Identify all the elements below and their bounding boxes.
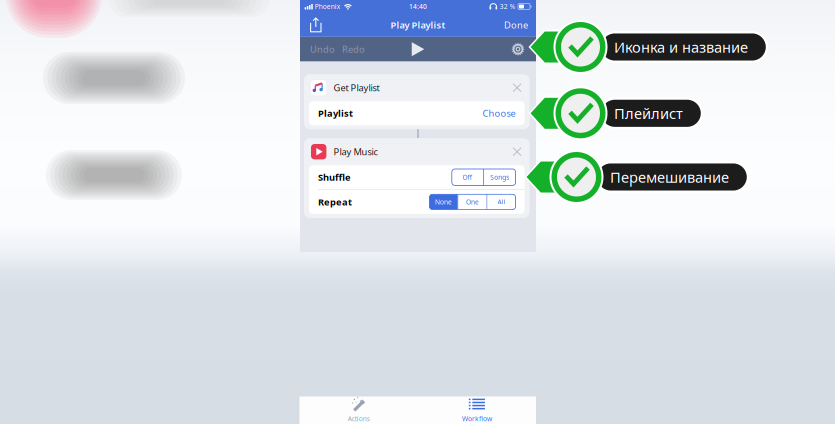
button[interactable]: Undo [310, 38, 335, 60]
staticText: Songs [490, 173, 509, 182]
staticText: None [435, 197, 452, 206]
button[interactable]: Choose [483, 103, 516, 123]
button[interactable]: Remove Get Playlist [512, 82, 523, 93]
button[interactable]: None [429, 194, 458, 209]
staticText: 32 % [500, 2, 516, 11]
staticText: Redo [342, 43, 365, 55]
staticText: Get Playlist [333, 81, 379, 94]
button[interactable]: Songs [484, 169, 516, 185]
staticText: Choose [483, 107, 516, 119]
button[interactable]: Settings [509, 40, 527, 58]
button[interactable]: Actions [299, 393, 418, 424]
staticText: Phoenix [315, 2, 341, 11]
button[interactable]: Workflow [418, 393, 536, 424]
staticText: Play Playlist [390, 19, 445, 31]
button[interactable]: Share [306, 15, 326, 35]
staticText: 14:40 [409, 2, 427, 11]
staticText: Actions [348, 414, 370, 423]
staticText: Перемешивание [610, 167, 729, 187]
button[interactable]: Redo [335, 38, 365, 60]
button[interactable]: All [487, 194, 516, 209]
button[interactable]: Run workflow [409, 39, 427, 59]
staticText: One [466, 197, 479, 206]
staticText: Иконка и название [614, 37, 748, 57]
staticText: Undo [310, 43, 335, 55]
staticText: Плейлист [614, 104, 683, 123]
staticText: Workflow [462, 414, 492, 423]
staticText: Done [504, 19, 528, 31]
button[interactable]: Remove Play Music [512, 146, 523, 157]
staticText: Repeat [318, 196, 352, 208]
staticText: All [497, 197, 505, 206]
button[interactable]: One [458, 194, 487, 209]
staticText: Shuffle [318, 171, 351, 183]
staticText: Playlist [318, 107, 353, 119]
button[interactable]: Off [452, 169, 483, 185]
staticText: Play Music [333, 145, 377, 158]
button[interactable]: Done [502, 15, 530, 35]
staticText: Off [463, 173, 473, 182]
